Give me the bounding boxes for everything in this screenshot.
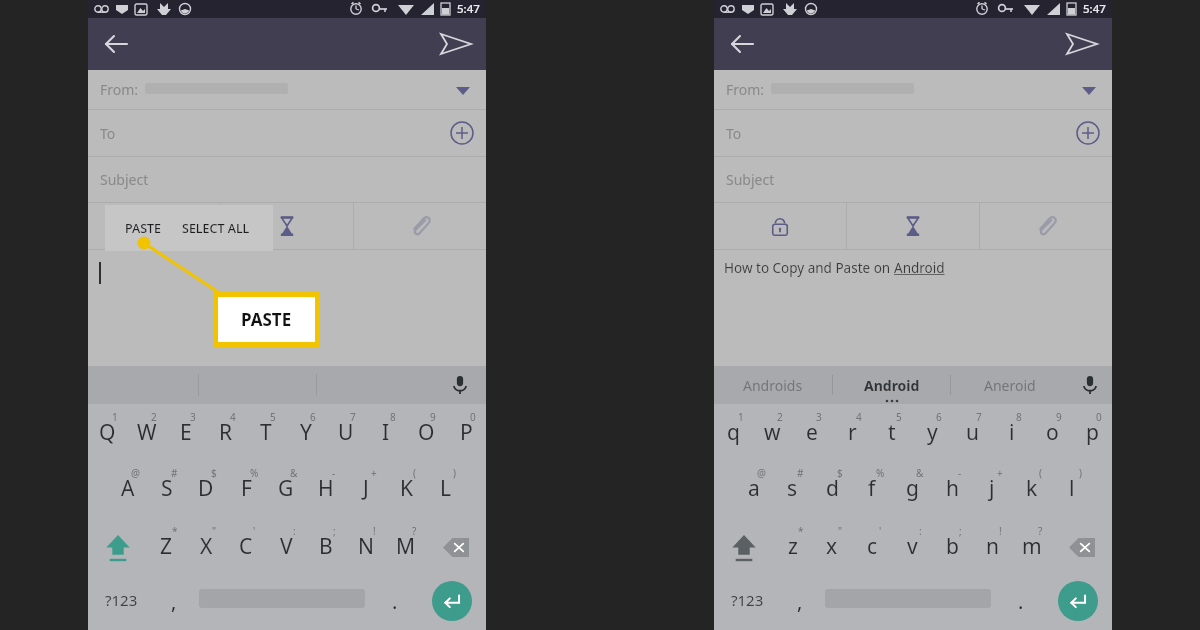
- button[interactable]: -: [932, 462, 972, 520]
- button[interactable]: ;: [932, 520, 972, 578]
- button[interactable]: ?: [1012, 520, 1052, 578]
- button[interactable]: 5: [872, 404, 912, 462]
- button[interactable]: (: [386, 462, 426, 520]
- button[interactable]: SELECT ALL: [182, 220, 250, 237]
- button[interactable]: ': [226, 520, 266, 578]
- button[interactable]: 7: [952, 404, 992, 462]
- button[interactable]: Voice input: [448, 373, 472, 397]
- button[interactable]: ,: [155, 578, 193, 630]
- button[interactable]: ': [852, 520, 892, 578]
- button[interactable]: .: [371, 578, 418, 630]
- button[interactable]: Back: [100, 27, 134, 61]
- button[interactable]: :: [892, 520, 932, 578]
- button[interactable]: :: [266, 520, 306, 578]
- button[interactable]: $: [812, 462, 852, 520]
- button[interactable]: !: [346, 520, 386, 578]
- button[interactable]: %: [226, 462, 266, 520]
- button[interactable]: PASTE: [125, 220, 162, 237]
- button[interactable]: Schedule send: [847, 203, 979, 249]
- button[interactable]: @: [734, 462, 773, 520]
- button[interactable]: 3: [792, 404, 832, 462]
- button[interactable]: &: [892, 462, 932, 520]
- button[interactable]: 4: [832, 404, 872, 462]
- button[interactable]: 4: [206, 404, 246, 462]
- button[interactable]: ): [1052, 462, 1092, 520]
- staticText: :: [293, 524, 296, 538]
- button[interactable]: Add recipient: [1074, 119, 1102, 147]
- button[interactable]: Space: [193, 578, 371, 630]
- button[interactable]: ;: [306, 520, 346, 578]
- button[interactable]: Attach file: [980, 203, 1112, 249]
- button[interactable]: Enter: [1044, 578, 1112, 630]
- button[interactable]: Backspace: [426, 520, 486, 578]
- button[interactable]: -: [306, 462, 346, 520]
- button[interactable]: 8: [992, 404, 1032, 462]
- button[interactable]: From:: [714, 70, 1112, 109]
- button[interactable]: 9: [1032, 404, 1072, 462]
- staticText: 5: [896, 410, 902, 424]
- button[interactable]: ): [426, 462, 466, 520]
- button[interactable]: Send: [1064, 26, 1100, 62]
- button[interactable]: 6: [912, 404, 952, 462]
- button[interactable]: Back: [726, 27, 760, 61]
- button[interactable]: Confidential mode: [714, 203, 846, 249]
- button[interactable]: !: [972, 520, 1012, 578]
- button[interactable]: Attach file: [354, 203, 486, 249]
- button[interactable]: To: [88, 110, 486, 156]
- button[interactable]: Add recipient: [448, 119, 476, 147]
- staticText: W: [137, 418, 157, 447]
- button[interactable]: *: [147, 520, 186, 578]
- button[interactable]: Androids: [714, 366, 832, 404]
- button[interactable]: 8: [366, 404, 406, 462]
- button[interactable]: Android: [833, 366, 950, 404]
- button[interactable]: Shift: [88, 520, 147, 578]
- staticText: f: [868, 474, 876, 503]
- button[interactable]: Shift: [714, 520, 773, 578]
- button[interactable]: +: [972, 462, 1012, 520]
- button[interactable]: @: [108, 462, 147, 520]
- button[interactable]: *: [773, 520, 812, 578]
- button[interactable]: Backspace: [1052, 520, 1112, 578]
- button[interactable]: Send: [438, 26, 474, 62]
- button[interactable]: %: [852, 462, 892, 520]
- button[interactable]: &: [266, 462, 306, 520]
- button[interactable]: 0: [1072, 404, 1112, 462]
- button[interactable]: #: [147, 462, 186, 520]
- button[interactable]: From:: [88, 70, 486, 109]
- button[interactable]: Subject: [88, 157, 486, 202]
- button[interactable]: ?123: [714, 578, 781, 630]
- button[interactable]: .: [997, 578, 1044, 630]
- button[interactable]: 1: [88, 404, 127, 462]
- staticText: +: [371, 466, 377, 480]
- button[interactable]: Subject: [714, 157, 1112, 202]
- button[interactable]: 9: [406, 404, 446, 462]
- button[interactable]: 6: [286, 404, 326, 462]
- staticText: 5: [270, 410, 276, 424]
- button[interactable]: ": [812, 520, 852, 578]
- button[interactable]: ?: [386, 520, 426, 578]
- button[interactable]: Voice input: [1078, 373, 1102, 397]
- button[interactable]: 3: [166, 404, 206, 462]
- button[interactable]: 0: [446, 404, 486, 462]
- button[interactable]: +: [346, 462, 386, 520]
- button[interactable]: $: [186, 462, 226, 520]
- button[interactable]: ,: [781, 578, 819, 630]
- button[interactable]: 5: [246, 404, 286, 462]
- button[interactable]: Enter: [418, 578, 486, 630]
- button[interactable]: Space: [819, 578, 997, 630]
- button[interactable]: Schedule send: [221, 203, 353, 249]
- button[interactable]: To: [714, 110, 1112, 156]
- staticText: Subject: [726, 170, 775, 189]
- staticText: Android: [894, 259, 945, 277]
- button[interactable]: Aneroid: [951, 366, 1068, 404]
- button[interactable]: 2: [127, 404, 166, 462]
- button[interactable]: 7: [326, 404, 366, 462]
- button[interactable]: ": [186, 520, 226, 578]
- button[interactable]: 1: [714, 404, 753, 462]
- button[interactable]: #: [773, 462, 812, 520]
- button[interactable]: 2: [753, 404, 792, 462]
- button[interactable]: Confidential mode: [88, 203, 220, 249]
- button[interactable]: ?123: [88, 578, 155, 630]
- staticText: k: [1026, 474, 1038, 503]
- button[interactable]: (: [1012, 462, 1052, 520]
